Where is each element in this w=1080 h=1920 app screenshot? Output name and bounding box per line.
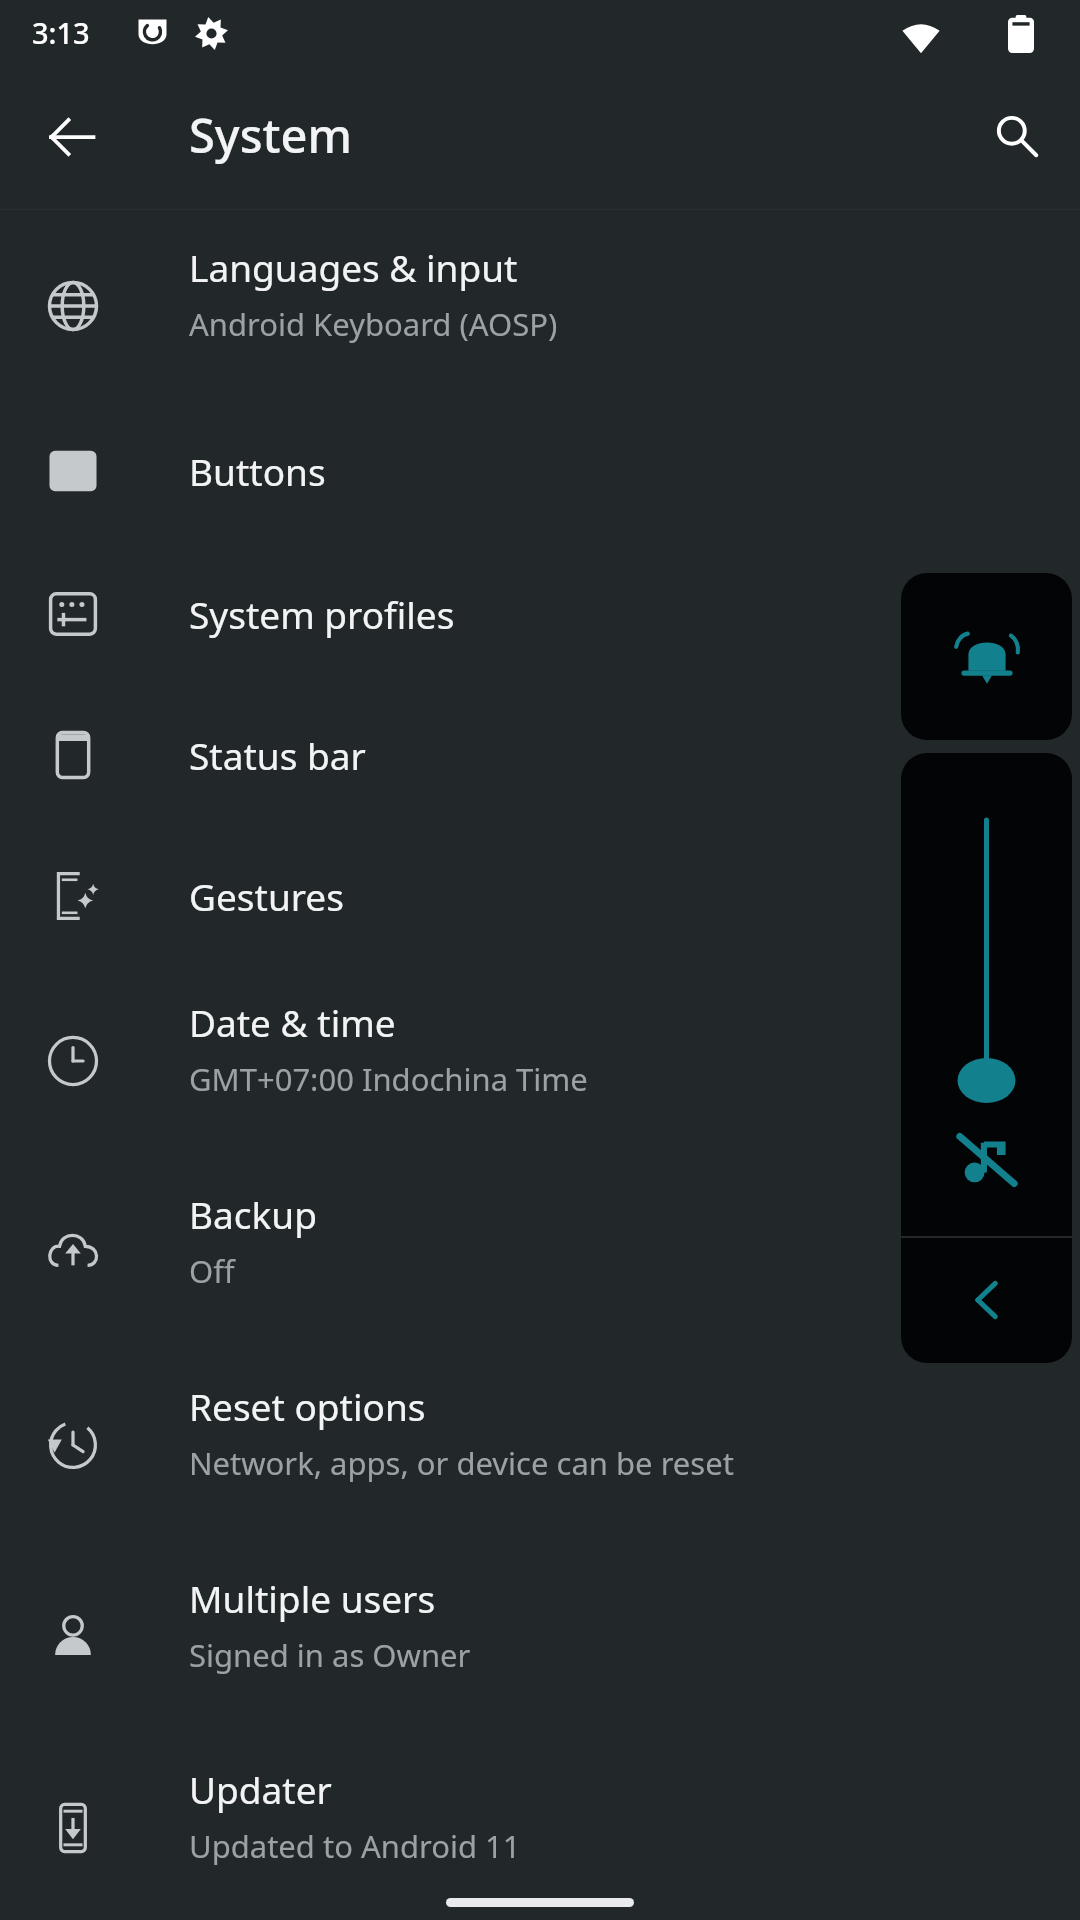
button[interactable]: Buttons [0, 401, 1080, 541]
button[interactable]: Expand [901, 1237, 1072, 1363]
staticText: Reset options [189, 1381, 426, 1431]
button[interactable]: Gestures [0, 826, 1080, 966]
button[interactable]: Ringer mode [901, 573, 1072, 740]
staticText: Updater [189, 1764, 332, 1814]
staticText: Network, apps, or device can be reset [189, 1442, 734, 1484]
button[interactable]: Date & time [0, 975, 1080, 1147]
staticText: 3:13 [32, 13, 90, 52]
button[interactable]: Search [968, 87, 1064, 183]
button[interactable]: Multiple users [0, 1551, 1080, 1723]
staticText: Off [189, 1250, 235, 1292]
button[interactable]: Reset options [0, 1359, 1080, 1531]
staticText: Android Keyboard (AOSP) [189, 303, 558, 345]
button[interactable]: Backup [0, 1167, 1080, 1339]
staticText: System profiles [189, 589, 455, 639]
button[interactable]: Status bar [0, 685, 1080, 825]
staticText: Status bar [189, 730, 366, 780]
staticText: System [189, 103, 352, 167]
staticText: Backup [189, 1189, 317, 1239]
button[interactable]: Updater [0, 1742, 1080, 1914]
staticText: GMT+07:00 Indochina Time [189, 1058, 588, 1100]
staticText: Date & time [189, 997, 396, 1047]
button[interactable]: System profiles [0, 544, 1080, 684]
button[interactable]: Mute [901, 1083, 1072, 1237]
staticText: Languages & input [189, 242, 518, 292]
staticText: Buttons [189, 446, 326, 496]
staticText: Multiple users [189, 1573, 436, 1623]
staticText: Updated to Android 11 [189, 1825, 521, 1867]
button[interactable]: Languages & input [0, 220, 1080, 392]
staticText: Gestures [189, 871, 344, 921]
button[interactable]: Back [24, 89, 120, 185]
staticText: Signed in as Owner [189, 1634, 471, 1676]
